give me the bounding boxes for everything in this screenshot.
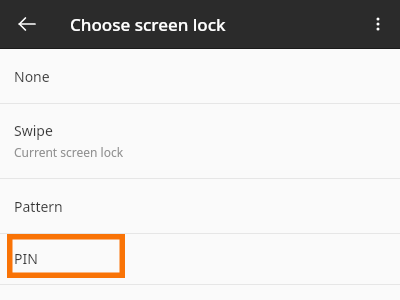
button[interactable]: Swipe — [0, 104, 400, 178]
staticText: None — [14, 67, 50, 86]
button[interactable]: More options — [360, 6, 396, 42]
button[interactable]: PIN — [0, 234, 400, 284]
staticText: PIN — [14, 249, 38, 268]
staticText: Current screen lock — [14, 144, 124, 160]
staticText: Swipe — [14, 121, 53, 140]
button[interactable]: None — [0, 49, 400, 103]
staticText: Choose screen lock — [70, 13, 226, 36]
staticText: Pattern — [14, 197, 63, 216]
button[interactable]: Back — [9, 6, 45, 42]
button[interactable]: Pattern — [0, 179, 400, 233]
